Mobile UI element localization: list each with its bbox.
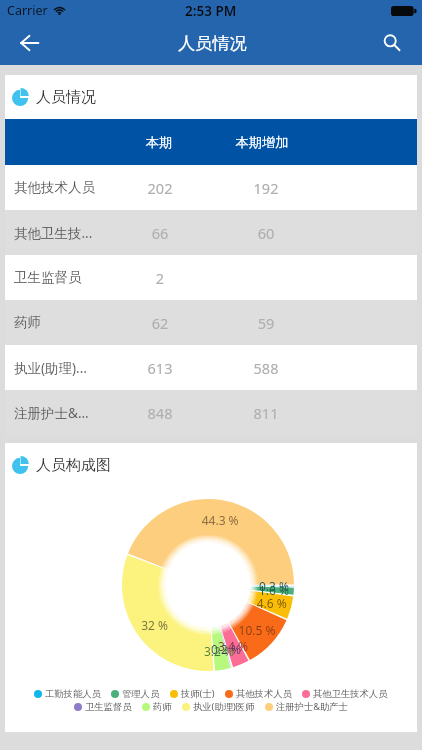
staticText: 执业(助理)医师 [193, 700, 255, 713]
staticText: 技师(士) [181, 687, 215, 700]
staticText: 59 [231, 313, 301, 333]
staticText: 人员情况 [36, 88, 96, 107]
staticText: 613 [126, 358, 194, 378]
staticText: 本期增加 [227, 134, 297, 151]
staticText: 其他卫生技... [14, 224, 93, 242]
staticText: 848 [126, 403, 194, 423]
staticText: 588 [231, 358, 301, 378]
staticText: 工勤技能人员 [45, 688, 101, 700]
button[interactable]: 执业(助理)... [5, 345, 417, 390]
staticText: 其他技术人员 [14, 179, 95, 196]
staticText: 62 [126, 313, 194, 333]
staticText: 192 [231, 178, 301, 198]
staticText: 卫生监督员 [85, 701, 132, 713]
button[interactable]: 其他技术人员 [5, 165, 417, 210]
staticText: 202 [126, 178, 194, 198]
staticText: 卫生监督员 [14, 269, 82, 286]
staticText: 人员构成图 [36, 456, 111, 475]
staticText: 60 [231, 223, 301, 243]
staticText: 2:53 PM [185, 2, 237, 20]
staticText: 管理人员 [122, 688, 160, 700]
staticText: 66 [126, 223, 194, 243]
staticText: Carrier [7, 2, 48, 19]
staticText: 811 [231, 403, 301, 423]
button[interactable]: 其他卫生技... [5, 210, 417, 255]
button[interactable]: 药师 [5, 300, 417, 345]
staticText: 本期 [125, 134, 193, 151]
staticText: 药师 [14, 314, 41, 331]
staticText: 注册护士&... [14, 404, 89, 422]
button[interactable]: 卫生监督员 [5, 255, 417, 300]
staticText: 注册护士&助产士 [276, 700, 348, 713]
staticText: 其他技术人员 [236, 688, 292, 700]
staticText: 2 [126, 268, 194, 288]
staticText: 其他卫生技术人员 [313, 688, 388, 700]
staticText: 人员情况 [178, 32, 247, 54]
button[interactable]: Search [371, 22, 413, 64]
button[interactable]: 注册护士&... [5, 390, 417, 435]
button[interactable]: Back [8, 22, 50, 64]
staticText: 药师 [153, 701, 172, 713]
staticText: 执业(助理)... [14, 359, 87, 377]
